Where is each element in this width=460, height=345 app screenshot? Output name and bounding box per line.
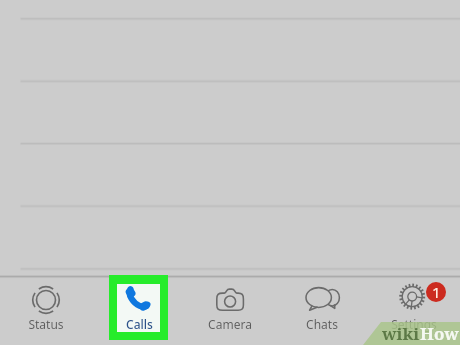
staticText: Camera: [208, 316, 252, 332]
button[interactable]: Calls: [117, 284, 160, 332]
staticText: wiki: [382, 322, 420, 344]
button[interactable]: Status: [0, 275, 92, 345]
staticText: Status: [28, 316, 64, 332]
other: Camera: [216, 286, 244, 314]
staticText: How: [420, 322, 459, 344]
staticText: Chats: [306, 316, 338, 332]
button[interactable]: Chats: [276, 275, 368, 345]
staticText: Calls: [126, 316, 153, 332]
other: Status: [32, 286, 60, 314]
other: Calls: [125, 286, 153, 314]
staticText: 1: [432, 282, 441, 302]
button[interactable]: Camera: [184, 275, 276, 345]
other: 1 notification: [426, 282, 446, 302]
button[interactable]: 1 notification: [368, 275, 460, 345]
staticText: Settings: [391, 316, 437, 332]
